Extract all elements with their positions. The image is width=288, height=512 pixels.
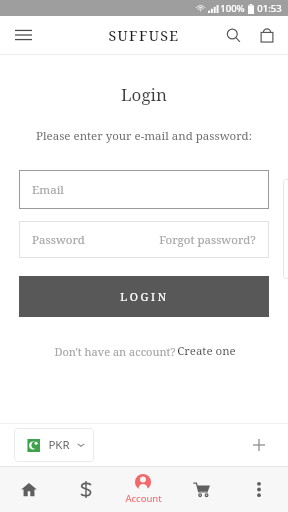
- staticText: Forgot password?: [159, 232, 256, 248]
- staticText: Email: [32, 182, 64, 198]
- button[interactable]: Create one: [177, 343, 236, 359]
- button[interactable]: LOGIN: [19, 276, 269, 317]
- button[interactable]: PKR: [14, 428, 94, 462]
- button[interactable]: Shopping bag: [252, 20, 282, 50]
- button[interactable]: Cart: [172, 467, 230, 512]
- staticText: Password: [32, 232, 85, 248]
- staticText: 100%: [220, 2, 245, 15]
- staticText: SUFFUSE: [108, 26, 180, 45]
- button[interactable]: Email: [19, 170, 269, 209]
- button[interactable]: Account: [114, 467, 172, 512]
- button[interactable]: More options: [230, 467, 288, 512]
- button[interactable]: Home: [0, 467, 57, 512]
- staticText: LOGIN: [120, 289, 169, 304]
- button[interactable]: Search: [218, 20, 248, 50]
- button[interactable]: Add: [244, 430, 274, 460]
- button[interactable]: Forgot password?: [159, 232, 256, 248]
- staticText: Login: [121, 83, 167, 106]
- staticText: Please enter your e-mail and password:: [36, 128, 252, 144]
- button[interactable]: Menu: [6, 18, 40, 52]
- staticText: PKR: [48, 437, 70, 453]
- staticText: Account: [125, 492, 162, 505]
- staticText: Create one: [177, 343, 236, 359]
- staticText: 01:53: [257, 2, 282, 15]
- staticText: Don't have an account?: [53, 344, 177, 359]
- button[interactable]: Currency: [57, 467, 114, 512]
- button[interactable]: Password: [19, 221, 269, 258]
